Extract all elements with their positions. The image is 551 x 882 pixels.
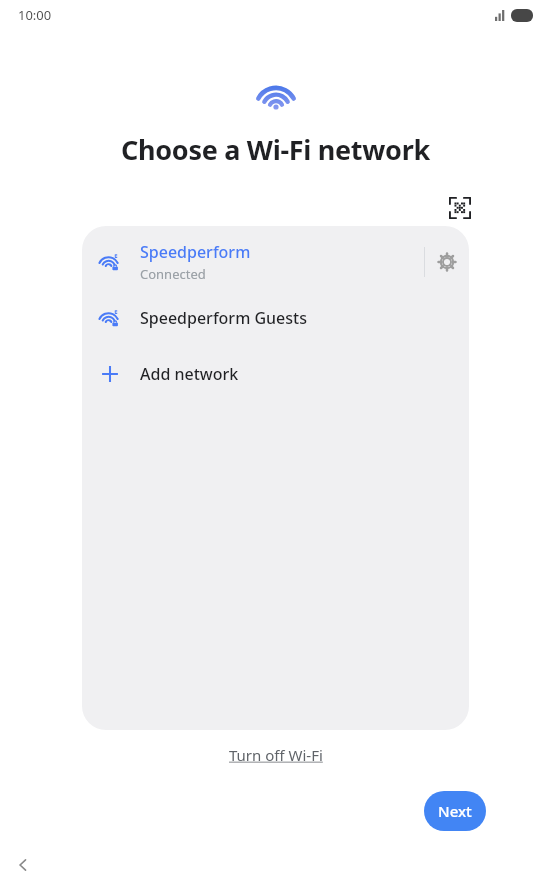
staticText: Speedperform Guests [140,307,307,329]
staticText: Add network [140,363,239,385]
button[interactable]: Speedperform [82,234,469,290]
staticText: Turn off Wi-Fi [229,745,323,765]
staticText: 10:00 [18,6,52,24]
button[interactable]: Back [6,848,40,882]
button[interactable]: Network settings [425,240,469,284]
button[interactable]: Turn off Wi-Fi [219,742,333,768]
staticText: Choose a Wi-Fi network [121,131,430,168]
button[interactable]: Next [424,791,486,831]
staticText: Connected [140,265,206,283]
button[interactable]: Add network [82,352,469,396]
staticText: Next [438,801,472,821]
button[interactable]: Scan QR code [443,191,477,225]
button[interactable]: Speedperform Guests [82,296,469,340]
staticText: Speedperform [140,241,251,263]
